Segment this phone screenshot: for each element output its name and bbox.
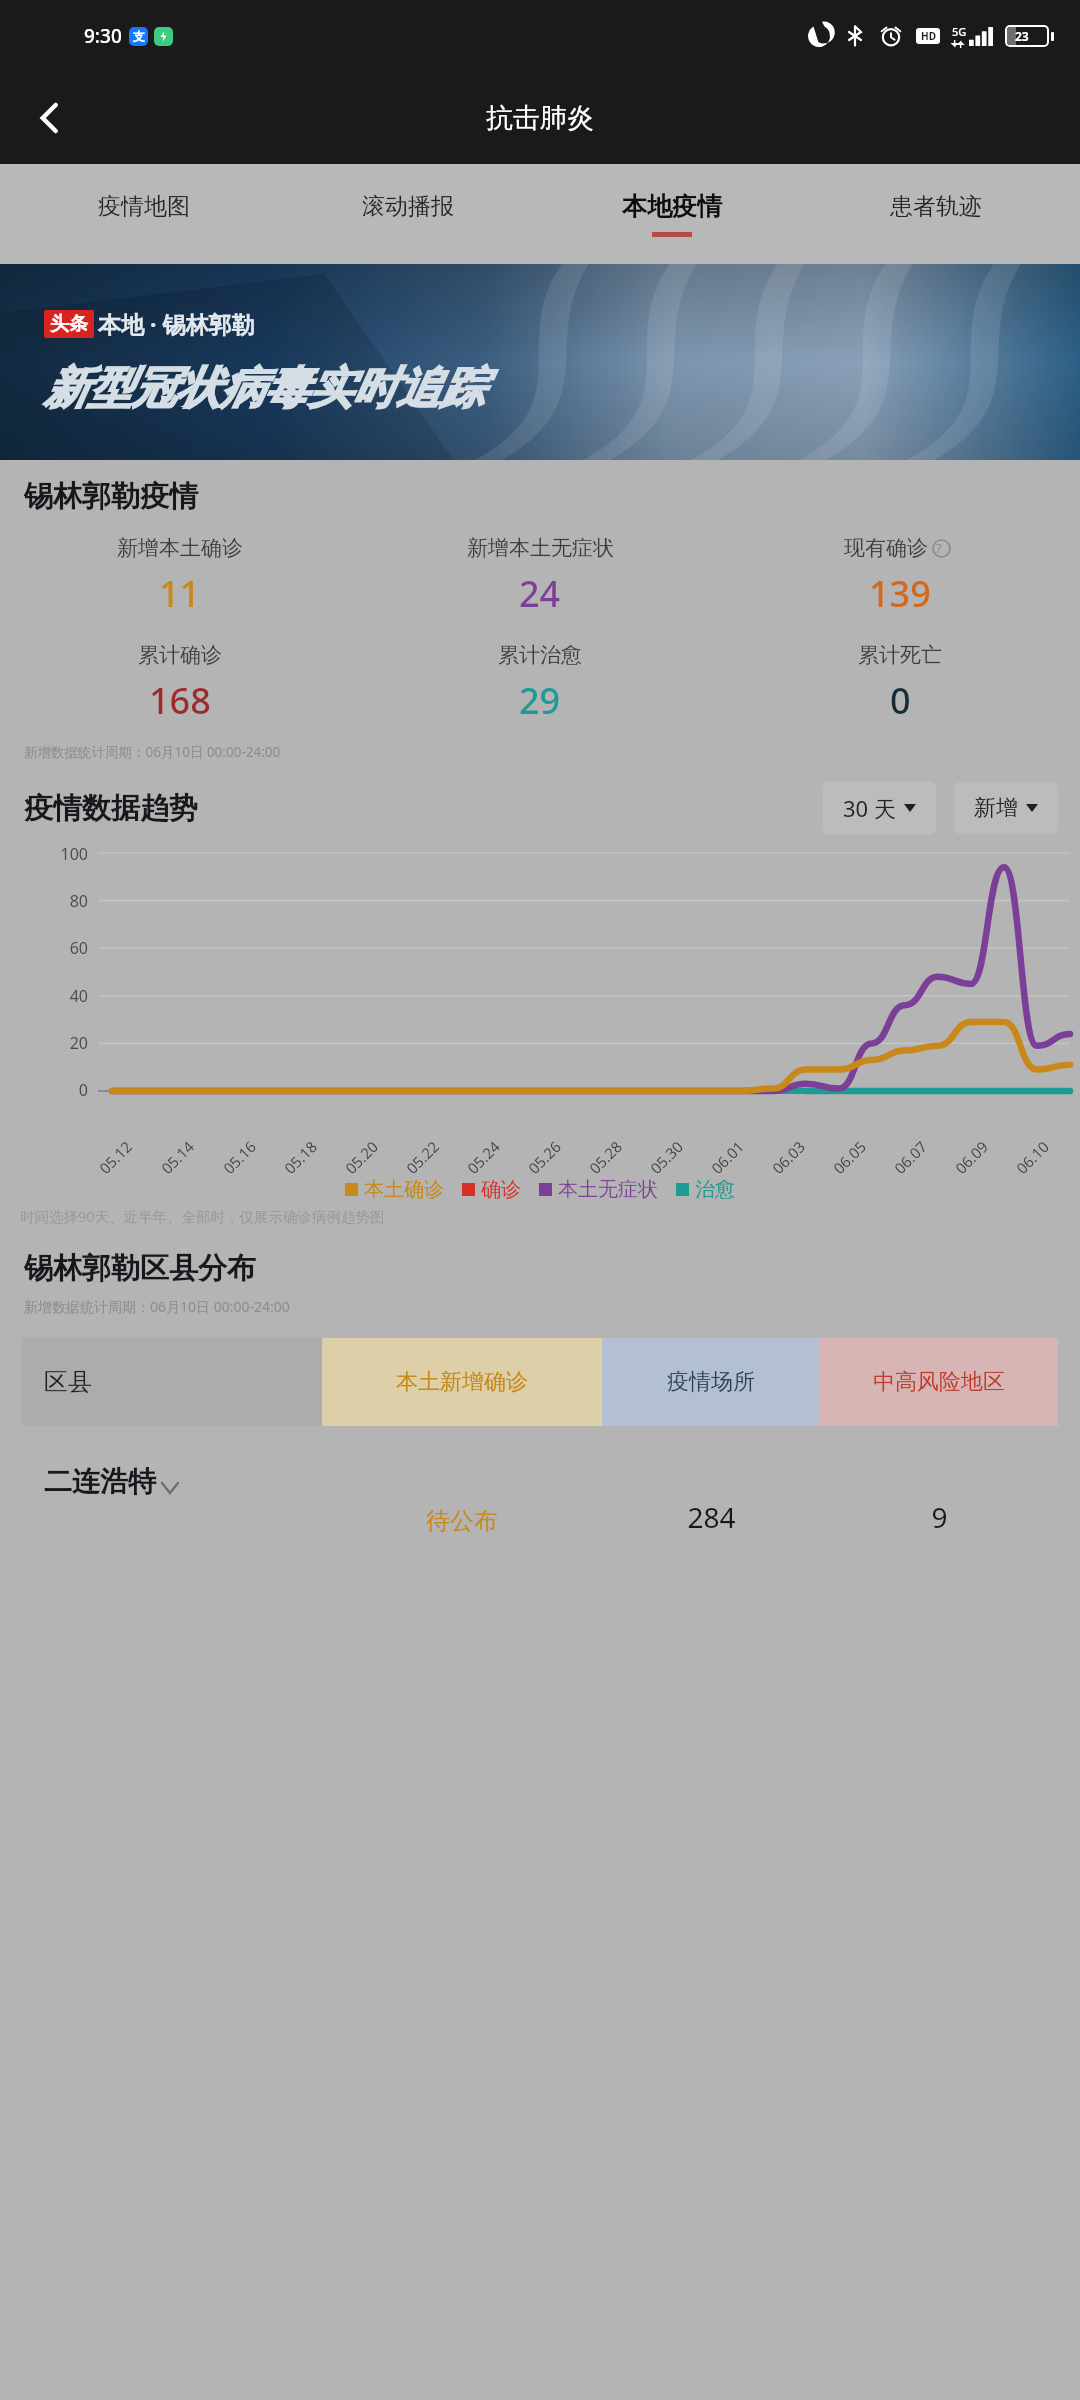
button[interactable]: 现有确诊 (720, 535, 1080, 618)
staticText: 本土无症状 (558, 1177, 658, 1202)
staticText: 本土新增确诊 (396, 1368, 528, 1396)
staticText: 29 (519, 676, 561, 725)
staticText: 139 (869, 569, 931, 618)
staticText: 284 (687, 1498, 736, 1536)
staticText: 新增数据统计周期：06月10日 00:00-24:00 (24, 1297, 290, 1316)
button[interactable]: 新增本土确诊 (0, 535, 360, 618)
staticText: 05.28 (585, 1136, 626, 1178)
staticText: 5G (952, 24, 967, 39)
button[interactable]: 中高风险地区 (820, 1338, 1058, 1426)
staticText: 治愈 (695, 1177, 735, 1202)
staticText: 60 (46, 937, 88, 959)
staticText: 头条 (50, 312, 88, 336)
staticText: 100 (46, 843, 88, 865)
staticText: 锡林郭勒疫情 (24, 478, 198, 515)
staticText: 05.24 (463, 1136, 504, 1178)
staticText: 滚动播报 (362, 192, 454, 221)
button[interactable]: 疫情地图 (12, 164, 276, 264)
staticText: 二连浩特 (44, 1464, 156, 1499)
button[interactable]: 滚动播报 (276, 164, 540, 264)
staticText: 9 (931, 1498, 948, 1536)
staticText: 时间选择90天、近半年、全部时，仅展示确诊病例趋势图 (20, 1206, 385, 1226)
staticText: 本地疫情 (622, 191, 722, 222)
staticText: 累计死亡 (858, 642, 942, 668)
button[interactable]: 患者轨迹 (804, 164, 1068, 264)
staticText: 锡林郭勒区县分布 (24, 1250, 256, 1287)
staticText: 05.22 (402, 1136, 443, 1178)
staticText: 累计治愈 (498, 642, 582, 668)
staticText: 新型冠状病毒实时追踪 (44, 361, 484, 416)
staticText: 确诊 (481, 1177, 521, 1202)
staticText: 06.01 (707, 1136, 748, 1178)
button[interactable]: 二连浩特 (22, 1426, 1058, 1536)
staticText: 24 (519, 569, 561, 618)
button[interactable]: 区县 (22, 1338, 322, 1426)
staticText: 新增 (974, 794, 1018, 822)
button[interactable]: 新增本土无症状 (360, 535, 720, 618)
staticText: 11 (159, 569, 201, 618)
staticText: 05.12 (95, 1136, 136, 1178)
staticText: 新增数据统计周期：06月10日 00:00-24:00 (24, 743, 281, 761)
staticText: 新增本土无症状 (467, 535, 614, 561)
button[interactable]: 累计治愈 (360, 642, 720, 725)
staticText: 累计确诊 (138, 642, 222, 668)
staticText: 05.30 (646, 1136, 687, 1178)
staticText: 本地 · 锡林郭勒 (98, 308, 255, 339)
staticText: 待公布 (426, 1506, 498, 1536)
staticText: 疫情地图 (98, 192, 190, 221)
staticText: 患者轨迹 (890, 192, 982, 221)
staticText: 23 (1015, 28, 1047, 44)
staticText: 0 (46, 1079, 88, 1101)
staticText: 40 (46, 985, 88, 1007)
staticText: 05.16 (219, 1136, 260, 1178)
staticText: HD (921, 29, 936, 43)
button[interactable]: 累计确诊 (0, 642, 360, 725)
staticText: 0 (890, 676, 911, 725)
staticText: 05.20 (341, 1136, 382, 1178)
staticText: ? (936, 539, 942, 557)
button[interactable]: 新增 (954, 782, 1058, 834)
staticText: 05.14 (157, 1136, 198, 1178)
staticText: 疫情场所 (667, 1368, 755, 1396)
staticText: 168 (149, 676, 211, 725)
button[interactable]: 累计死亡 (720, 642, 1080, 725)
staticText: 本土确诊 (364, 1177, 444, 1202)
staticText: 05.18 (280, 1136, 321, 1178)
staticText: 新增本土确诊 (117, 535, 243, 561)
staticText: 现有确诊 (844, 535, 928, 561)
staticText: 06.03 (768, 1136, 809, 1178)
staticText: 05.26 (524, 1136, 565, 1178)
button[interactable]: 本土新增确诊 (322, 1338, 602, 1426)
staticText: 支 (133, 29, 145, 44)
staticText: 9:30 (84, 23, 122, 49)
button[interactable]: 本土无症状 (539, 1177, 658, 1202)
staticText: 20 (46, 1032, 88, 1054)
button[interactable]: 本土确诊 (345, 1177, 444, 1202)
button[interactable]: 疫情场所 (602, 1338, 820, 1426)
staticText: 疫情数据趋势 (24, 790, 198, 827)
button[interactable]: 治愈 (676, 1177, 735, 1202)
button[interactable]: Back (20, 88, 80, 148)
staticText: 06.07 (890, 1136, 931, 1178)
button[interactable]: 30 天 (823, 781, 936, 835)
staticText: 30 天 (843, 793, 896, 823)
staticText: 06.10 (1012, 1136, 1053, 1178)
staticText: 中高风险地区 (873, 1368, 1005, 1396)
staticText: 80 (46, 890, 88, 912)
staticText: 06.09 (951, 1136, 992, 1178)
staticText: 06.05 (829, 1136, 870, 1178)
staticText: 抗击肺炎 (486, 101, 594, 135)
button[interactable]: 确诊 (462, 1177, 521, 1202)
staticText: 区县 (44, 1367, 92, 1397)
button[interactable]: 本地疫情 (540, 164, 804, 264)
